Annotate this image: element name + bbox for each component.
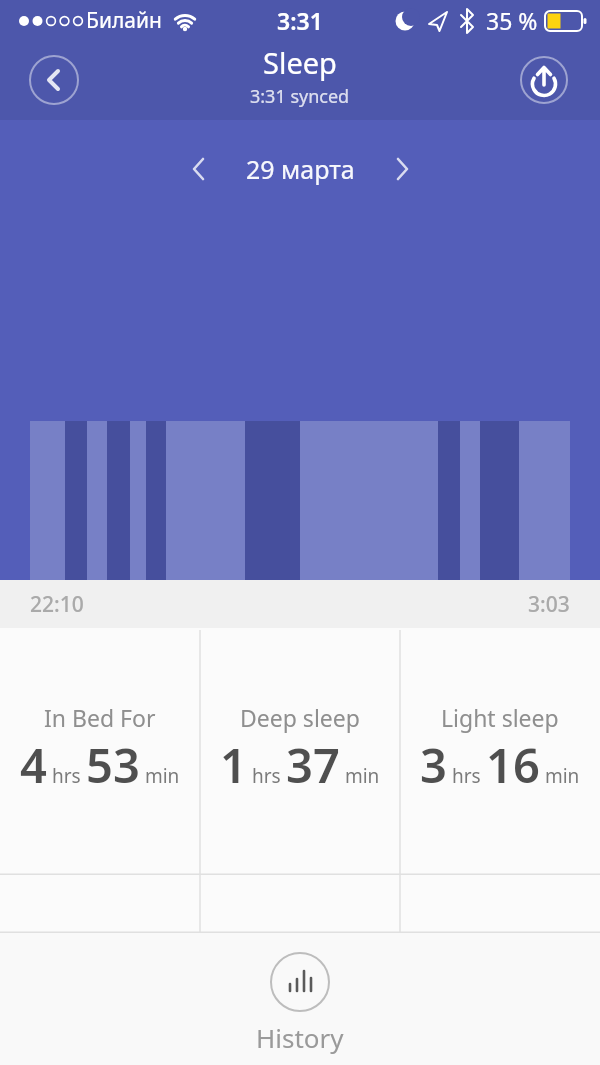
staticText: Билайн [86,6,162,35]
staticText: hrs [247,763,286,789]
staticText: hrs [47,763,86,789]
button[interactable]: Light sleep [400,628,600,875]
staticText: 3:31 synced [250,84,350,109]
staticText: 1 [220,733,247,797]
button[interactable]: History [256,952,344,1055]
staticText: Deep sleep [240,702,360,733]
staticText: min [340,763,380,789]
staticText: 37 [286,733,340,797]
button[interactable] [29,55,79,105]
staticText: 4 [20,733,47,797]
staticText: 3:31 [277,5,323,36]
staticText: 3 [420,733,447,797]
button[interactable] [180,150,218,188]
button[interactable] [520,56,568,104]
staticText: 53 [86,733,140,797]
staticText: 29 марта [246,152,355,186]
staticText: min [140,763,180,789]
button[interactable]: In Bed For [0,628,200,875]
staticText: 22:10 [30,590,84,619]
staticText: History [256,1020,344,1055]
button[interactable] [383,150,421,188]
button[interactable]: Deep sleep [200,628,400,875]
staticText: 35 % [486,5,538,36]
staticText: 16 [486,733,540,797]
staticText: In Bed For [44,702,156,733]
staticText: hrs [447,763,486,789]
staticText: Sleep [263,43,337,82]
staticText: Light sleep [441,702,559,733]
staticText: min [540,763,580,789]
staticText: 3:03 [528,590,570,619]
